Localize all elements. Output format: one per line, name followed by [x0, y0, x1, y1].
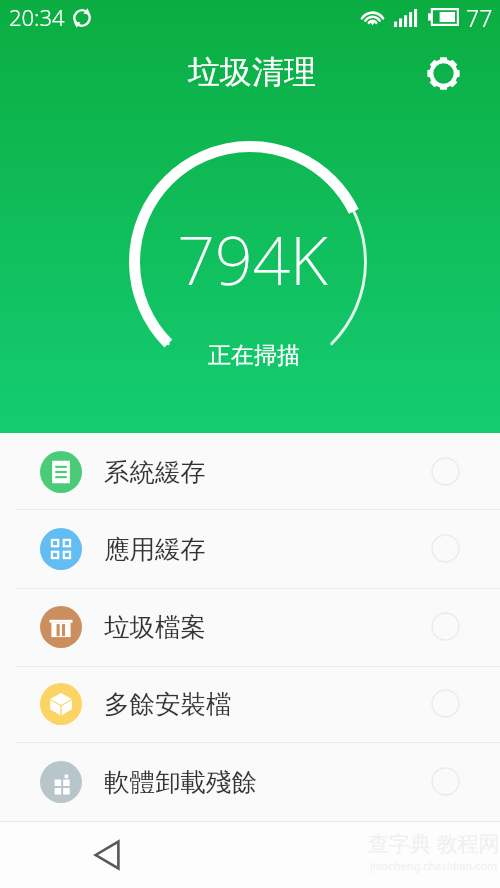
staticText: 查字典 教程网 — [368, 829, 500, 858]
button[interactable]: Settings — [423, 53, 464, 94]
staticText: 794K — [177, 214, 328, 304]
staticText: 正在掃描 — [208, 341, 300, 370]
button[interactable]: 垃圾檔案 — [0, 588, 500, 665]
button[interactable]: Back — [82, 830, 132, 880]
staticText: 垃圾清理 — [188, 52, 316, 92]
button[interactable]: 應用緩存 — [0, 510, 500, 587]
staticText: 軟體卸載殘餘 — [104, 766, 257, 798]
staticText: 多餘安裝檔 — [104, 688, 232, 720]
button[interactable]: 軟體卸載殘餘 — [0, 743, 500, 820]
button[interactable]: 系統緩存 — [0, 433, 500, 510]
button[interactable]: 多餘安裝檔 — [0, 665, 500, 742]
staticText: 系統緩存 — [104, 456, 206, 488]
staticText: 77 — [466, 2, 493, 33]
staticText: 20:34 — [9, 2, 65, 32]
staticText: 垃圾檔案 — [104, 611, 206, 643]
staticText: 應用緩存 — [104, 533, 206, 565]
staticText: jiaocheng.chazidian.com — [370, 858, 498, 873]
